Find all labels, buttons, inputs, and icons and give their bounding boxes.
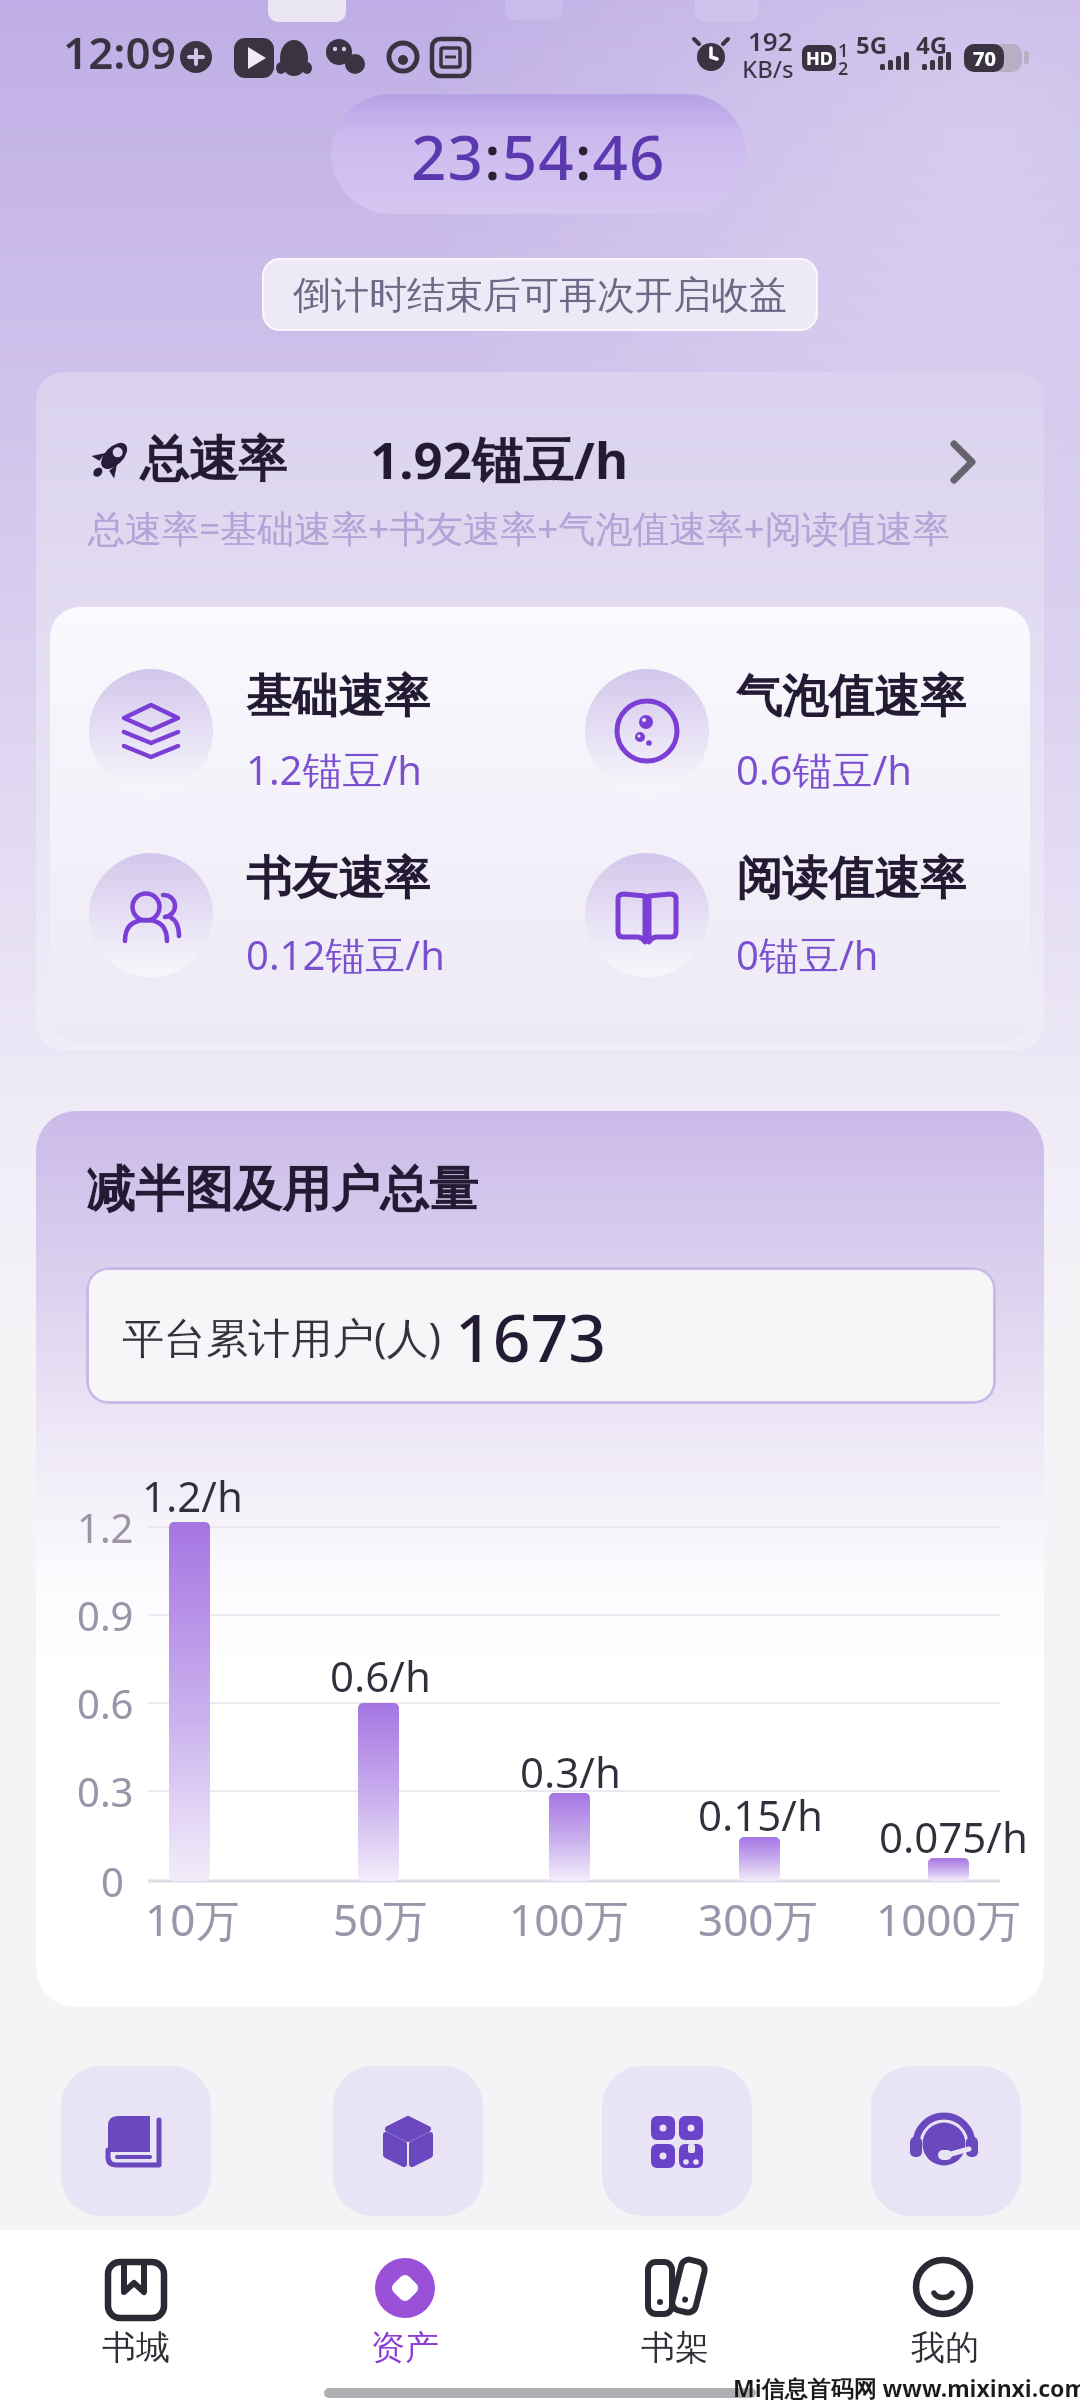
- staticText: 总速率=基础速率+书友速率+气泡值速率+阅读值速率: [88, 502, 950, 553]
- staticText: 1000万: [876, 1889, 1021, 1949]
- button[interactable]: [36, 2240, 236, 2380]
- staticText: 0.9: [77, 1588, 134, 1642]
- staticText: 总速率: [140, 429, 287, 491]
- staticText: 减半图及用户总量: [86, 1159, 478, 1221]
- staticText: 4G: [916, 28, 948, 61]
- button[interactable]: [60, 420, 1020, 500]
- staticText: 300万: [698, 1889, 818, 1949]
- staticText: 10万: [145, 1889, 240, 1949]
- staticText: 0: [101, 1854, 124, 1908]
- staticText: 0.3: [77, 1764, 134, 1818]
- staticText: 50万: [333, 1889, 428, 1949]
- staticText: 70: [973, 45, 996, 72]
- button[interactable]: [333, 2066, 483, 2216]
- staticText: 1.2锚豆/h: [246, 742, 423, 797]
- staticText: 资产: [371, 2326, 439, 2369]
- staticText: 0.6: [77, 1676, 134, 1730]
- staticText: Mi信息首码网 www.mixinxi.com: [733, 2372, 1080, 2400]
- staticText: 气泡值速率: [736, 668, 966, 726]
- staticText: 0.3/h: [520, 1743, 621, 1800]
- staticText: 基础速率: [246, 668, 430, 726]
- staticText: 192: [748, 23, 793, 58]
- staticText: 平台累计用户(人): [122, 1308, 442, 1365]
- staticText: 0.6锚豆/h: [736, 742, 913, 797]
- staticText: 1.92锚豆/h: [370, 424, 629, 494]
- staticText: 书城: [102, 2326, 170, 2369]
- staticText: KB/s: [742, 52, 794, 85]
- staticText: 我的: [911, 2326, 979, 2369]
- staticText: 倒计时结束后可再次开启收益: [293, 271, 787, 319]
- staticText: 0.075/h: [879, 1808, 1028, 1865]
- staticText: 2: [838, 56, 849, 81]
- button[interactable]: [305, 2240, 505, 2380]
- button[interactable]: [61, 2066, 211, 2216]
- staticText: 100万: [509, 1889, 629, 1949]
- staticText: 书架: [641, 2326, 709, 2369]
- staticText: 23:54:46: [411, 114, 666, 198]
- staticText: 1.2/h: [142, 1467, 243, 1524]
- staticText: 书友速率: [246, 850, 430, 908]
- staticText: 5G: [856, 28, 888, 61]
- staticText: 0.15/h: [698, 1786, 823, 1843]
- button[interactable]: [845, 2240, 1045, 2380]
- staticText: 12:09: [63, 22, 176, 82]
- staticText: 1673: [455, 1291, 607, 1381]
- staticText: 0锚豆/h: [736, 927, 879, 982]
- button[interactable]: [602, 2066, 752, 2216]
- staticText: 1.2: [77, 1500, 134, 1554]
- staticText: HD: [806, 46, 833, 71]
- staticText: 0.6/h: [330, 1647, 431, 1704]
- button[interactable]: [575, 2240, 775, 2380]
- staticText: 0.12锚豆/h: [246, 927, 445, 982]
- button[interactable]: [871, 2066, 1021, 2216]
- staticText: 阅读值速率: [736, 850, 966, 908]
- staticText: 1: [838, 38, 849, 63]
